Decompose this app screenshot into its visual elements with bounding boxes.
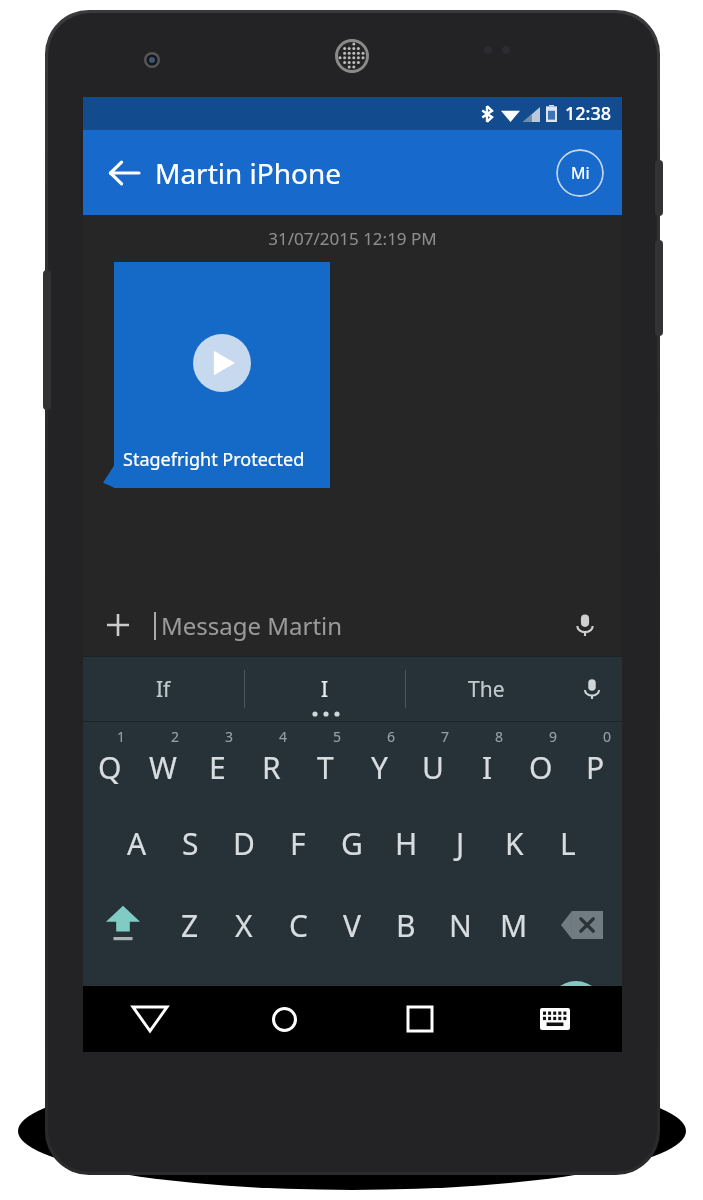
button[interactable]: 3 <box>190 722 244 802</box>
staticText: 1 <box>117 727 126 746</box>
button[interactable]: V <box>325 884 379 966</box>
button[interactable]: 2 <box>136 722 190 802</box>
staticText: If <box>156 675 171 704</box>
button[interactable]: I <box>245 657 405 721</box>
button[interactable]: Voice typing <box>570 667 614 711</box>
button[interactable]: M <box>487 884 541 966</box>
staticText: 2 <box>171 727 180 746</box>
staticText: W <box>149 747 177 788</box>
button[interactable]: S <box>163 802 217 884</box>
staticText: Message Martin <box>161 609 343 642</box>
staticText: Z <box>181 905 199 946</box>
button[interactable]: Z <box>163 884 217 966</box>
staticText: 7 <box>441 727 450 746</box>
button[interactable]: Home <box>217 986 352 1052</box>
staticText: T <box>317 747 334 788</box>
button[interactable]: Shift <box>83 884 163 966</box>
staticText: F <box>290 823 306 864</box>
staticText: P <box>586 747 605 788</box>
button[interactable]: 7 <box>406 722 460 802</box>
staticText: V <box>343 905 361 946</box>
button[interactable]: Attach <box>91 598 145 652</box>
button[interactable]: K <box>487 802 541 884</box>
button[interactable]: The <box>406 657 566 721</box>
staticText: C <box>289 905 308 946</box>
staticText: 5 <box>333 727 342 746</box>
staticText: . <box>504 985 511 1020</box>
staticText: J <box>456 823 465 864</box>
button[interactable]: H <box>379 802 433 884</box>
button[interactable]: 6 <box>352 722 406 802</box>
button[interactable]: 9 <box>514 722 568 802</box>
button[interactable]: B <box>379 884 433 966</box>
staticText: ?123 <box>104 994 150 1023</box>
staticText: Stagefright Protected <box>123 447 305 472</box>
button[interactable]: N <box>433 884 487 966</box>
button[interactable]: F <box>271 802 325 884</box>
button[interactable]: A <box>110 802 163 884</box>
button[interactable]: Delete <box>541 884 622 966</box>
staticText: Mi <box>571 162 590 184</box>
staticText: M <box>500 905 528 946</box>
staticText: 4 <box>279 727 288 746</box>
staticText: O <box>529 747 553 788</box>
staticText: 9 <box>549 727 558 746</box>
staticText: G <box>341 823 363 864</box>
staticText: 12:38 <box>565 101 612 126</box>
button[interactable]: . <box>484 966 530 1051</box>
staticText: 31/07/2015 12:19 PM <box>83 227 622 250</box>
staticText: The <box>468 675 505 704</box>
button[interactable]: G <box>325 802 379 884</box>
button[interactable]: If <box>83 657 244 721</box>
staticText: U <box>422 747 444 788</box>
staticText: 3 <box>225 727 234 746</box>
staticText: E <box>209 747 226 788</box>
staticText: D <box>233 823 255 864</box>
button[interactable]: 4 <box>244 722 298 802</box>
staticText: R <box>262 747 281 788</box>
button[interactable]: J <box>433 802 487 884</box>
staticText: , <box>191 985 198 1020</box>
button[interactable]: Recents <box>352 986 487 1052</box>
staticText: Y <box>371 747 388 788</box>
button[interactable]: Back <box>83 986 217 1052</box>
staticText: A <box>127 823 147 864</box>
button[interactable]: L <box>541 802 595 884</box>
button[interactable]: 0 <box>568 722 622 802</box>
staticText: Q <box>98 747 122 788</box>
button[interactable]: 1 <box>83 722 136 802</box>
staticText: L <box>560 823 576 864</box>
button[interactable]: Mi <box>556 149 604 197</box>
staticText: N <box>449 905 472 946</box>
button[interactable]: Space <box>217 988 484 1029</box>
button[interactable]: 8 <box>460 722 514 802</box>
button[interactable]: , <box>171 966 217 1051</box>
button[interactable]: Keyboard <box>487 986 622 1052</box>
staticText: S <box>182 823 199 864</box>
button[interactable]: D <box>217 802 271 884</box>
staticText: K <box>505 823 524 864</box>
button[interactable]: 5 <box>298 722 352 802</box>
button[interactable]: Voice input <box>560 600 610 650</box>
button[interactable]: ?123 <box>83 966 171 1051</box>
staticText: B <box>396 905 416 946</box>
button[interactable]: Stagefright Protected <box>114 262 330 488</box>
button[interactable]: C <box>271 884 325 966</box>
staticText: 8 <box>495 727 504 746</box>
button[interactable]: X <box>217 884 271 966</box>
staticText: 6 <box>387 727 396 746</box>
button[interactable]: Back <box>97 146 151 200</box>
button[interactable]: Enter <box>548 981 604 1037</box>
staticText: Martin iPhone <box>155 154 342 192</box>
staticText: I <box>321 675 329 704</box>
staticText: I <box>482 747 493 788</box>
staticText: H <box>395 823 418 864</box>
staticText: X <box>235 905 253 946</box>
staticText: 0 <box>603 727 612 746</box>
